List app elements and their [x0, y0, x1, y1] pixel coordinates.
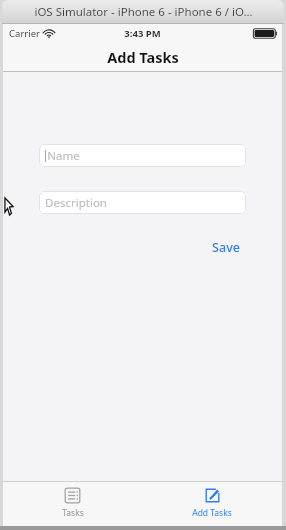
- staticText: Description: [45, 195, 107, 211]
- staticText: 3:43 PM: [124, 27, 161, 40]
- button[interactable]: Tasks: [3, 482, 142, 526]
- staticText: Name: [47, 148, 80, 164]
- button[interactable]: Save: [206, 236, 246, 259]
- staticText: iOS Simulator - iPhone 6 - iPhone 6 / iO…: [34, 4, 253, 20]
- staticText: Carrier: [9, 27, 40, 40]
- staticText: Add Tasks: [192, 507, 232, 519]
- button[interactable]: Name: [39, 144, 246, 167]
- button[interactable]: Description: [39, 191, 246, 214]
- staticText: Save: [212, 239, 240, 256]
- button[interactable]: Add Tasks: [142, 482, 282, 526]
- staticText: Tasks: [62, 507, 84, 519]
- staticText: Add Tasks: [107, 47, 179, 67]
